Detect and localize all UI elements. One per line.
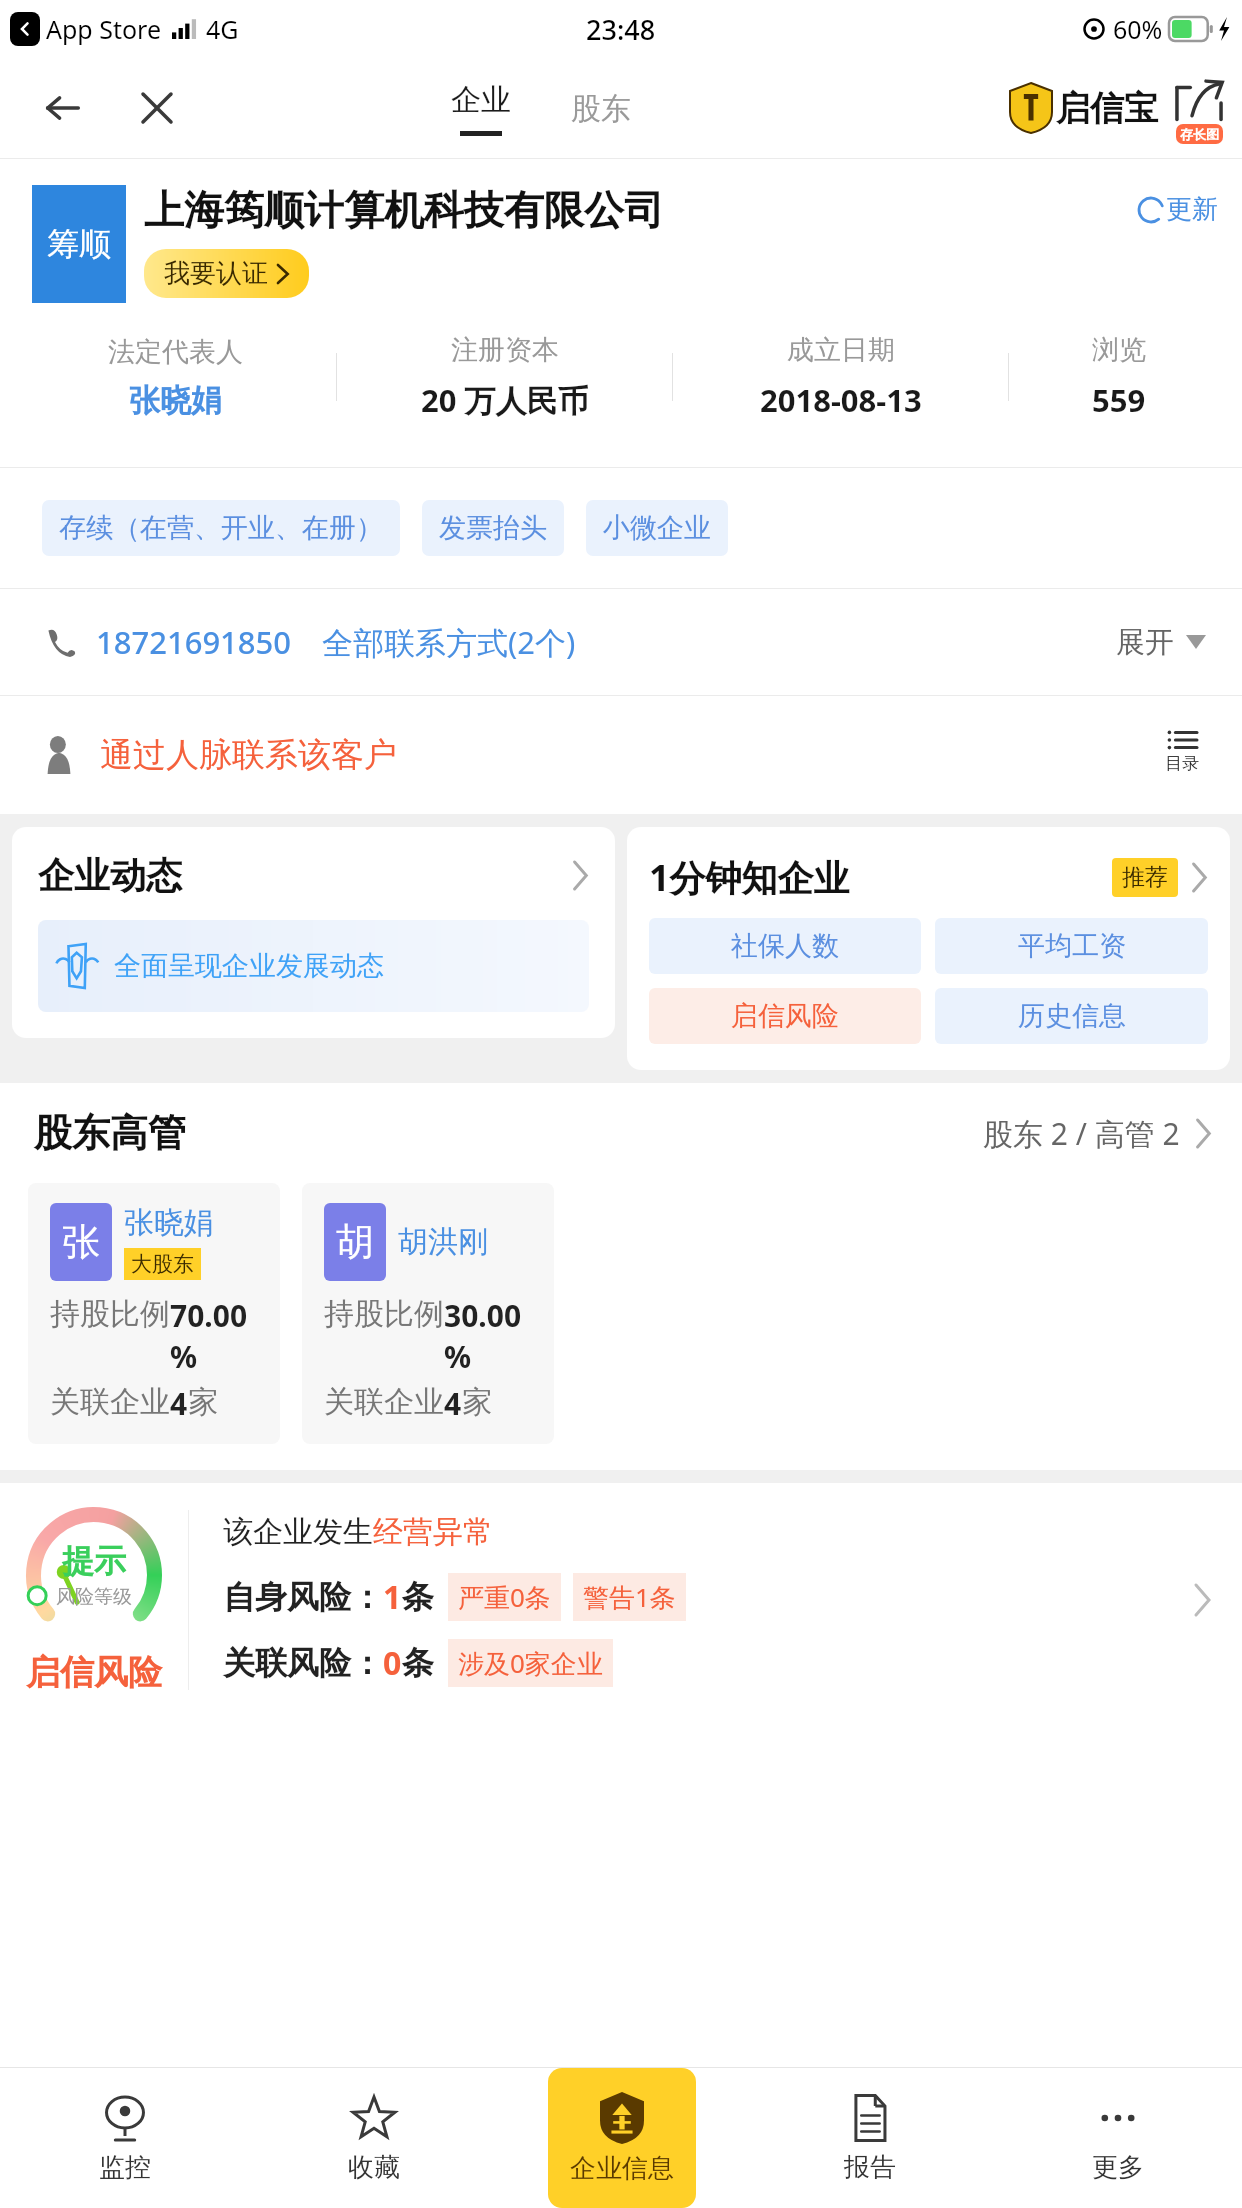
staticText: 发票抬头 — [439, 511, 547, 545]
staticText: 提示 — [62, 1541, 126, 1581]
staticText: 存续（在营、开业、在册） — [59, 511, 383, 545]
button[interactable]: 关闭 — [134, 85, 180, 131]
staticText: 18721691850 — [96, 621, 292, 663]
staticText: 企业 — [451, 81, 511, 119]
staticText: 注册资本 — [451, 333, 559, 367]
staticText: 股东 2 / 高管 2 — [983, 1113, 1180, 1154]
staticText: 经营异常 — [373, 1513, 493, 1551]
staticText: 平均工资 — [1018, 929, 1126, 963]
staticText: 关联风险： — [223, 1643, 383, 1683]
staticText: 该企业发生 — [223, 1513, 373, 1551]
button[interactable]: 历史信息 — [935, 988, 1208, 1044]
staticText: 风险等级 — [56, 1585, 132, 1609]
button[interactable]: 小微企业 — [586, 500, 728, 556]
staticText: 存长图 — [1180, 126, 1219, 142]
staticText: 家 — [188, 1383, 218, 1421]
staticText: 监控 — [99, 2151, 151, 2184]
staticText: App Store — [46, 12, 162, 46]
staticText: 小微企业 — [603, 511, 711, 545]
staticText: 4 — [170, 1383, 188, 1424]
staticText: 上海筠顺计算机科技有限公司 — [144, 185, 664, 235]
button[interactable]: 企业信息 — [548, 2068, 696, 2208]
button[interactable]: 更多 — [994, 2068, 1242, 2208]
staticText: 60% — [1113, 12, 1163, 46]
staticText: 1分钟知企业 — [649, 853, 850, 902]
button[interactable]: 我要认证 — [144, 249, 309, 298]
staticText: 20 万人民币 — [421, 379, 589, 421]
staticText: 历史信息 — [1018, 999, 1126, 1033]
staticText: 股东高管 — [34, 1109, 186, 1157]
button[interactable]: 存续（在营、开业、在册） — [42, 500, 400, 556]
button[interactable]: 18721691850 — [0, 589, 1242, 695]
staticText: 持股比例 — [324, 1295, 444, 1333]
staticText: 持股比例 — [50, 1295, 170, 1333]
staticText: 严重0条 — [458, 1579, 551, 1615]
button[interactable]: 报告 — [746, 2068, 994, 2208]
button[interactable]: 目录 — [1144, 714, 1220, 790]
staticText: 30.00% — [444, 1295, 540, 1377]
button[interactable]: 启信风险 — [649, 988, 921, 1044]
staticText: 条 — [402, 1643, 434, 1683]
staticText: 胡洪刚 — [398, 1223, 488, 1261]
button[interactable]: 胡 — [302, 1183, 554, 1444]
staticText: 全面呈现企业发展动态 — [114, 949, 384, 983]
button[interactable]: 更新 — [1139, 193, 1218, 226]
staticText: 张 — [62, 1218, 100, 1266]
staticText: 我要认证 — [164, 257, 268, 290]
staticText: 关联企业 — [324, 1383, 444, 1421]
staticText: 股东 — [571, 90, 631, 128]
button[interactable]: 股东 — [563, 86, 639, 132]
button[interactable]: 提示 — [0, 1483, 1242, 1716]
staticText: 4 — [444, 1383, 462, 1424]
staticText: 启信风险 — [731, 999, 839, 1033]
staticText: 浏览 — [1092, 333, 1146, 367]
button[interactable]: 监控 — [0, 2068, 249, 2208]
staticText: 4G — [206, 12, 239, 46]
staticText: 目录 — [1165, 753, 1199, 774]
staticText: 70.00% — [170, 1295, 266, 1377]
staticText: 推荐 — [1122, 863, 1168, 892]
staticText: 社保人数 — [731, 929, 839, 963]
staticText: 展开 — [1116, 624, 1174, 661]
staticText: 警告1条 — [583, 1579, 676, 1615]
staticText: 关联企业 — [50, 1383, 170, 1421]
button[interactable]: 1分钟知企业 — [627, 827, 1230, 1070]
button[interactable]: 存长图 — [1170, 76, 1228, 140]
staticText: 23:48 — [586, 11, 656, 48]
staticText: 张晓娟 — [129, 381, 222, 420]
staticText: 0 — [383, 1641, 402, 1685]
staticText: 筹顺 — [47, 224, 111, 264]
staticText: 1 — [383, 1575, 402, 1619]
button[interactable]: 通过人脉联系该客户 — [0, 696, 1242, 814]
button[interactable]: 返回 — [40, 85, 86, 131]
staticText: 报告 — [844, 2151, 896, 2184]
staticText: 法定代表人 — [108, 335, 243, 369]
staticText: 559 — [1092, 379, 1146, 421]
button[interactable]: 收藏 — [249, 2068, 498, 2208]
button[interactable]: 社保人数 — [649, 918, 921, 974]
button[interactable]: 股东高管 — [0, 1109, 1242, 1157]
staticText: 收藏 — [348, 2151, 400, 2184]
button[interactable]: 企业动态 — [12, 827, 615, 1038]
staticText: 企业动态 — [38, 853, 182, 898]
staticText: 胡 — [336, 1218, 374, 1266]
button[interactable]: 平均工资 — [935, 918, 1208, 974]
staticText: 家 — [462, 1383, 492, 1421]
staticText: 更新 — [1166, 193, 1218, 226]
staticText: 启信宝 — [1056, 87, 1158, 130]
button[interactable]: 发票抬头 — [422, 500, 564, 556]
staticText: 成立日期 — [787, 333, 895, 367]
staticText: 2018-08-13 — [760, 379, 922, 421]
staticText: 条 — [402, 1577, 434, 1617]
button[interactable]: 企业 — [443, 81, 519, 136]
staticText: 全部联系方式(2个) — [322, 621, 576, 663]
staticText: 通过人脉联系该客户 — [100, 734, 397, 776]
staticText: 企业信息 — [570, 2152, 674, 2185]
staticText: 张晓娟 — [124, 1204, 214, 1242]
staticText: 涉及0家企业 — [458, 1645, 603, 1681]
staticText: 自身风险： — [223, 1577, 383, 1617]
staticText: 大股东 — [131, 1251, 194, 1277]
staticText: 启信风险 — [26, 1651, 162, 1694]
staticText: 更多 — [1092, 2151, 1144, 2184]
button[interactable]: 张 — [28, 1183, 280, 1444]
